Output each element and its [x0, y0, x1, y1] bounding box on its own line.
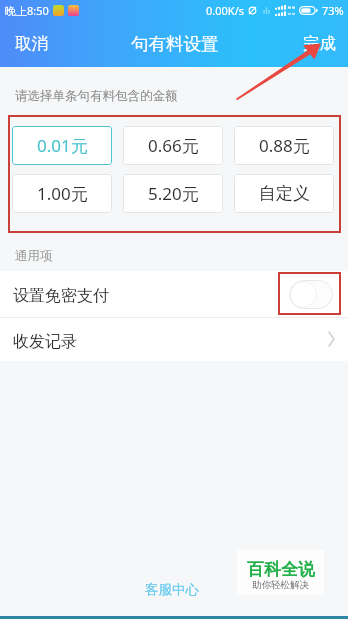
staticText: 晚上8:50 [5, 3, 49, 18]
button[interactable]: 客服中心 [145, 581, 199, 598]
button[interactable]: 自定义 [234, 174, 334, 213]
button[interactable]: 设置免密支付 [0, 271, 348, 317]
staticText: 完成 [303, 33, 336, 54]
staticText: 取消 [15, 33, 48, 54]
staticText: 5.20元 [148, 182, 199, 205]
staticText: 句有料设置 [131, 33, 219, 55]
staticText: 百科全说 [247, 559, 315, 580]
staticText: 通用项 [15, 248, 53, 264]
staticText: 1.00元 [37, 182, 88, 205]
staticText: 0.01元 [37, 134, 88, 157]
button[interactable]: 取消 [9, 28, 54, 59]
staticText: 助你轻松解决 [252, 579, 309, 591]
staticText: 设置免密支付 [13, 286, 109, 306]
button[interactable]: Toggle password-free payment [289, 280, 333, 309]
button[interactable]: 5.20元 [123, 174, 223, 213]
button[interactable]: 1.00元 [12, 174, 112, 213]
button[interactable]: 0.66元 [123, 126, 223, 165]
staticText: 请选择单条句有料包含的金额 [15, 88, 178, 104]
staticText: 0.88元 [259, 134, 310, 157]
staticText: 0.66元 [148, 134, 199, 157]
button[interactable]: 完成 [297, 28, 342, 59]
staticText: 73% [322, 3, 344, 18]
staticText: 自定义 [259, 183, 310, 204]
staticText: 0.00K/s [206, 3, 244, 18]
button[interactable]: 0.88元 [234, 126, 334, 165]
button[interactable]: 收发记录 [0, 318, 348, 361]
staticText: 客服中心 [145, 581, 199, 598]
button[interactable]: 0.01元 [12, 126, 112, 165]
staticText: 收发记录 [13, 332, 77, 352]
